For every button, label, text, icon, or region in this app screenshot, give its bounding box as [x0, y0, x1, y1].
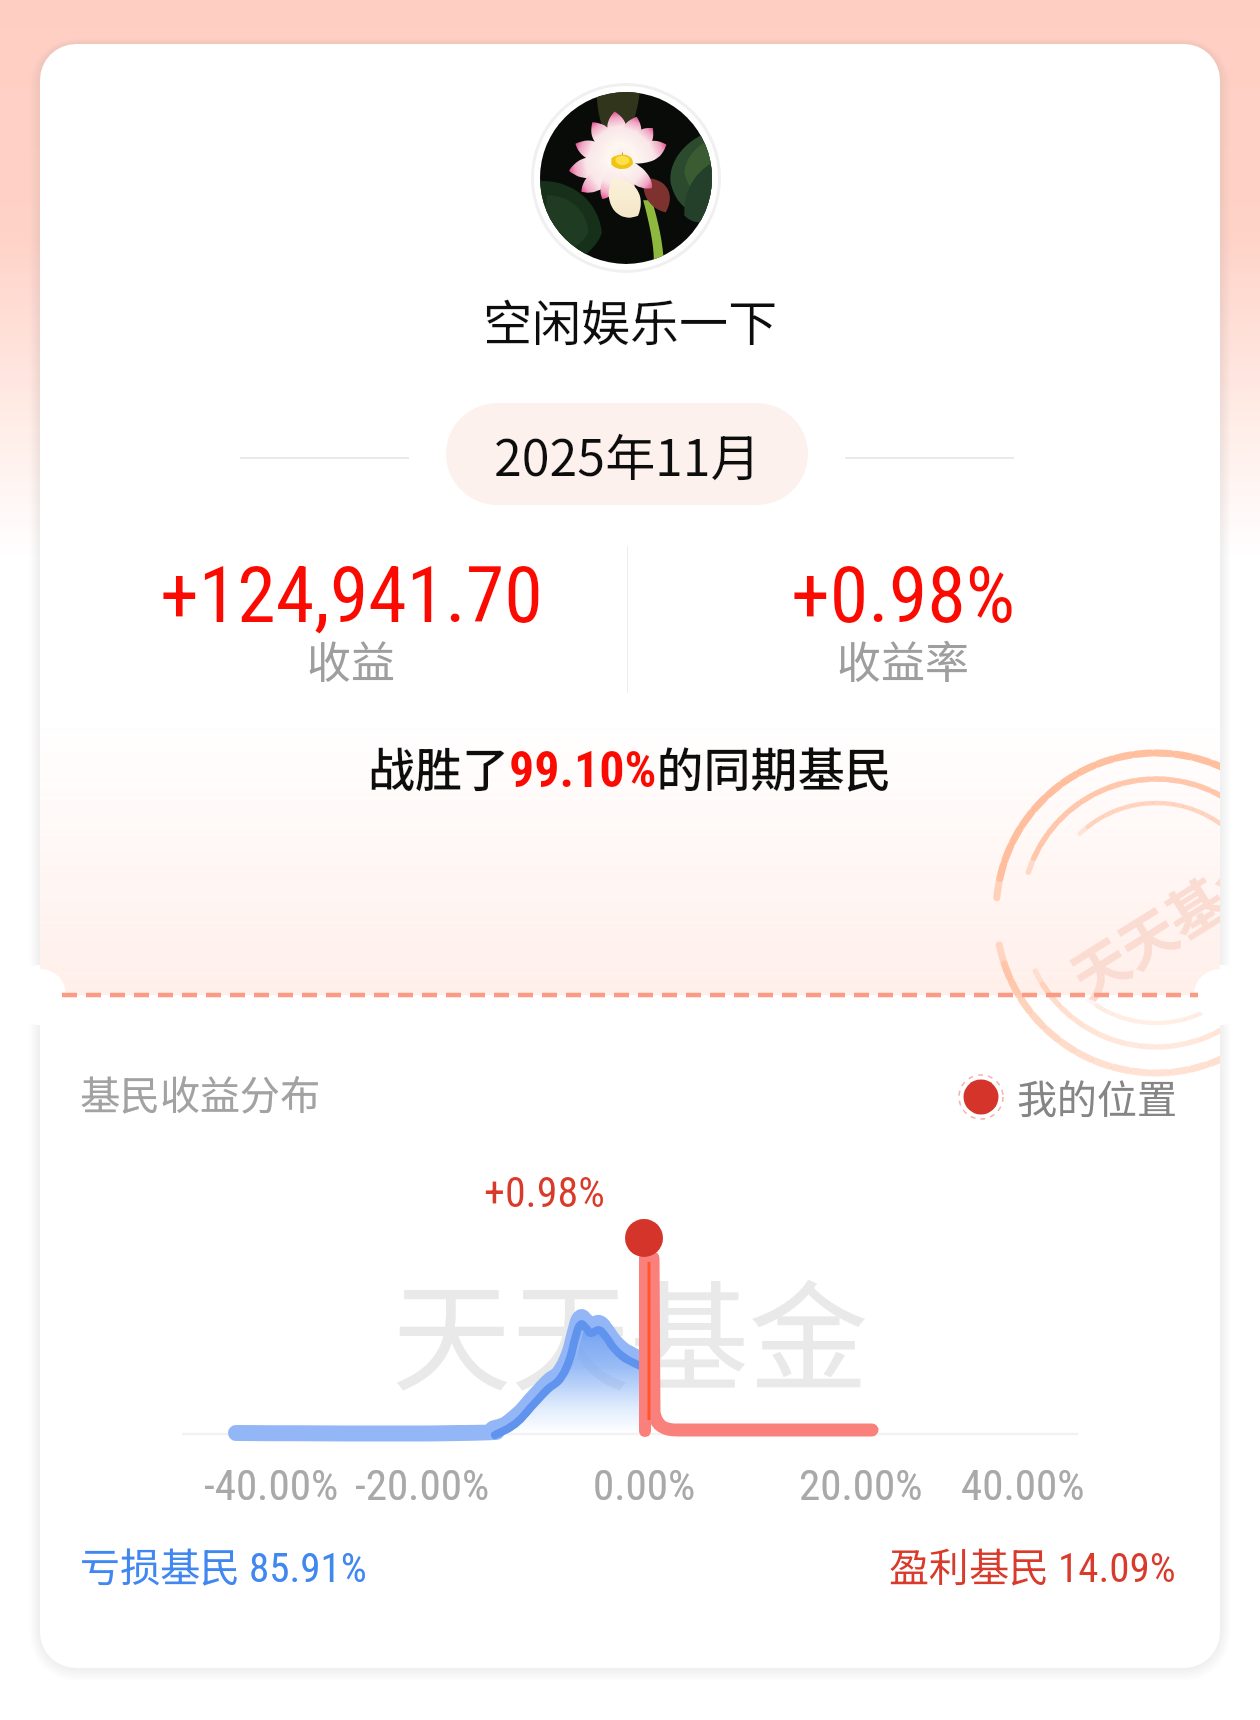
button[interactable]: 我的位置	[955, 1068, 1177, 1126]
staticText: 我的位置	[1017, 1068, 1177, 1126]
staticText: +0.98%	[791, 550, 1016, 641]
staticText: -20.00%	[355, 1460, 490, 1510]
button[interactable]: Profile avatar	[531, 83, 721, 273]
staticText: 2025年11月	[494, 418, 761, 490]
staticText: 20.00%	[799, 1460, 923, 1510]
staticText: 收益	[307, 627, 395, 691]
staticText: 0.00%	[593, 1460, 696, 1510]
staticText: 收益率	[837, 627, 969, 691]
staticText: 40.00%	[961, 1460, 1085, 1510]
staticText: +124,941.70	[160, 550, 543, 641]
staticText: 空闲娱乐一下	[483, 284, 778, 355]
staticText: 战胜了99.10%的同期基民	[368, 732, 892, 800]
staticText: +0.98%	[484, 1168, 605, 1217]
staticText: -40.00%	[204, 1460, 339, 1510]
button[interactable]: 2025年11月	[446, 403, 808, 505]
staticText: 盈利基民 14.09%	[889, 1536, 1176, 1594]
staticText: 天天基金	[1054, 827, 1220, 1014]
staticText: 天天基金	[392, 1243, 868, 1415]
staticText: 亏损基民 85.91%	[80, 1536, 367, 1594]
staticText: 基民收益分布	[80, 1064, 320, 1122]
